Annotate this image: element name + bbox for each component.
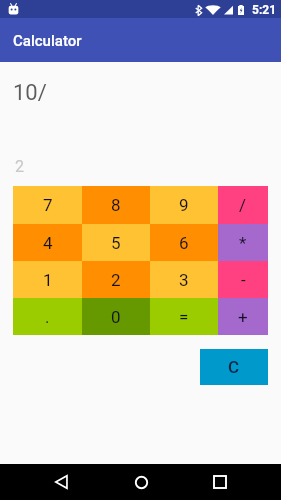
staticText: 10/ [13,80,47,106]
staticText: 2 [111,270,121,290]
staticText: - [241,270,246,290]
button[interactable]: - [218,261,268,298]
button[interactable]: 0 [82,298,150,335]
button[interactable]: Recents [202,464,238,500]
staticText: / [239,195,247,215]
button[interactable]: / [218,186,268,224]
button[interactable]: * [218,224,268,261]
staticText: 0 [111,307,121,327]
button[interactable]: 7 [13,186,82,224]
staticText: 5:21 [252,3,277,17]
staticText: 1 [43,270,53,290]
staticText: 3 [179,270,189,290]
staticText: 4 [43,233,53,253]
button[interactable]: + [218,298,268,335]
button[interactable]: 8 [82,186,150,224]
staticText: 9 [179,195,189,215]
staticText: 8 [111,195,121,215]
button[interactable]: 6 [150,224,218,261]
button[interactable]: 4 [13,224,82,261]
button[interactable]: 1 [13,261,82,298]
button[interactable]: 2 [82,261,150,298]
staticText: 6 [179,233,189,253]
staticText: * [239,233,247,253]
button[interactable]: 9 [150,186,218,224]
staticText: + [238,307,248,327]
staticText: = [179,307,189,327]
staticText: Calculator [13,32,82,50]
button[interactable]: Home [123,464,159,500]
staticText: 2 [15,157,24,176]
button[interactable]: . [13,298,82,335]
button[interactable]: 3 [150,261,218,298]
staticText: 5 [111,233,121,253]
button[interactable]: 5 [82,224,150,261]
staticText: 7 [43,195,53,215]
staticText: . [45,307,50,327]
button[interactable]: C [200,349,268,385]
button[interactable]: = [150,298,218,335]
button[interactable]: Back [43,464,79,500]
staticText: C [228,357,240,377]
